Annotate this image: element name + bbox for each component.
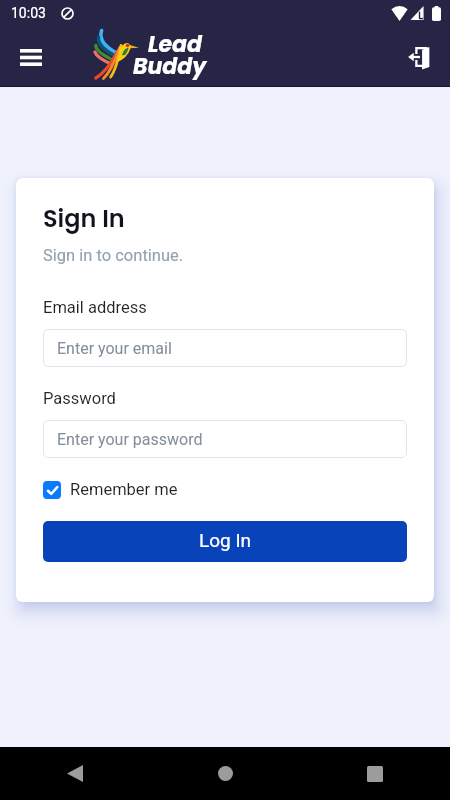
button[interactable]: Home — [150, 747, 300, 800]
button[interactable]: Log In — [43, 521, 407, 562]
staticText: Sign In — [43, 202, 125, 236]
button[interactable]: Recent apps — [300, 747, 450, 800]
staticText: 10:03 — [11, 5, 46, 21]
button[interactable]: Enter your password — [43, 420, 407, 458]
button[interactable]: Enter your email — [43, 329, 407, 367]
button[interactable]: Log out — [398, 35, 442, 79]
staticText: Lead — [148, 29, 202, 60]
staticText: Enter your email — [57, 339, 172, 358]
button[interactable]: Open navigation menu — [7, 33, 55, 81]
staticText: Sign in to continue. — [43, 246, 184, 265]
staticText: Enter your password — [57, 430, 203, 449]
staticText: Log In — [199, 529, 252, 551]
button[interactable]: Back — [0, 747, 150, 800]
staticText: Remember me — [70, 480, 178, 499]
staticText: Password — [43, 389, 116, 408]
button[interactable]: Remember me — [43, 480, 178, 499]
staticText: Buddy — [133, 51, 207, 82]
staticText: Email address — [43, 298, 147, 317]
